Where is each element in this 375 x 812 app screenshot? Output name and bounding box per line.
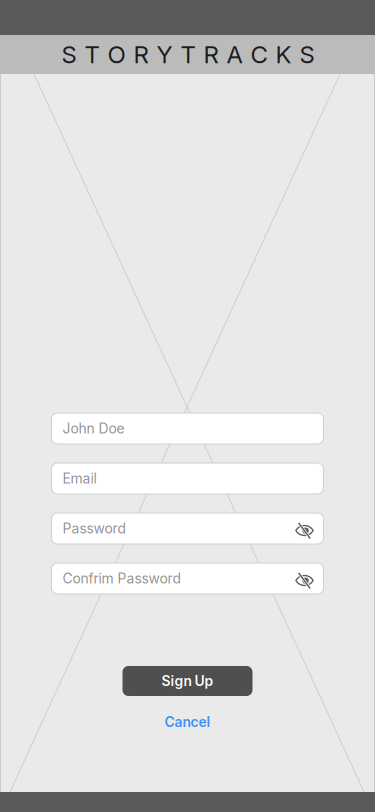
button[interactable]: Show Password [291,515,317,541]
button[interactable]: Cancel [122,711,252,733]
staticText: Email [62,470,96,487]
button[interactable]: Show Confrim Password [291,565,317,591]
staticText: John Doe [62,420,124,437]
staticText: Confrim Password [62,570,180,587]
staticText: Sign Up [161,673,213,689]
button[interactable]: Sign Up [122,666,252,696]
staticText: STORYTRACKS [61,40,314,69]
staticText: Cancel [164,714,210,730]
staticText: Password [62,520,125,537]
